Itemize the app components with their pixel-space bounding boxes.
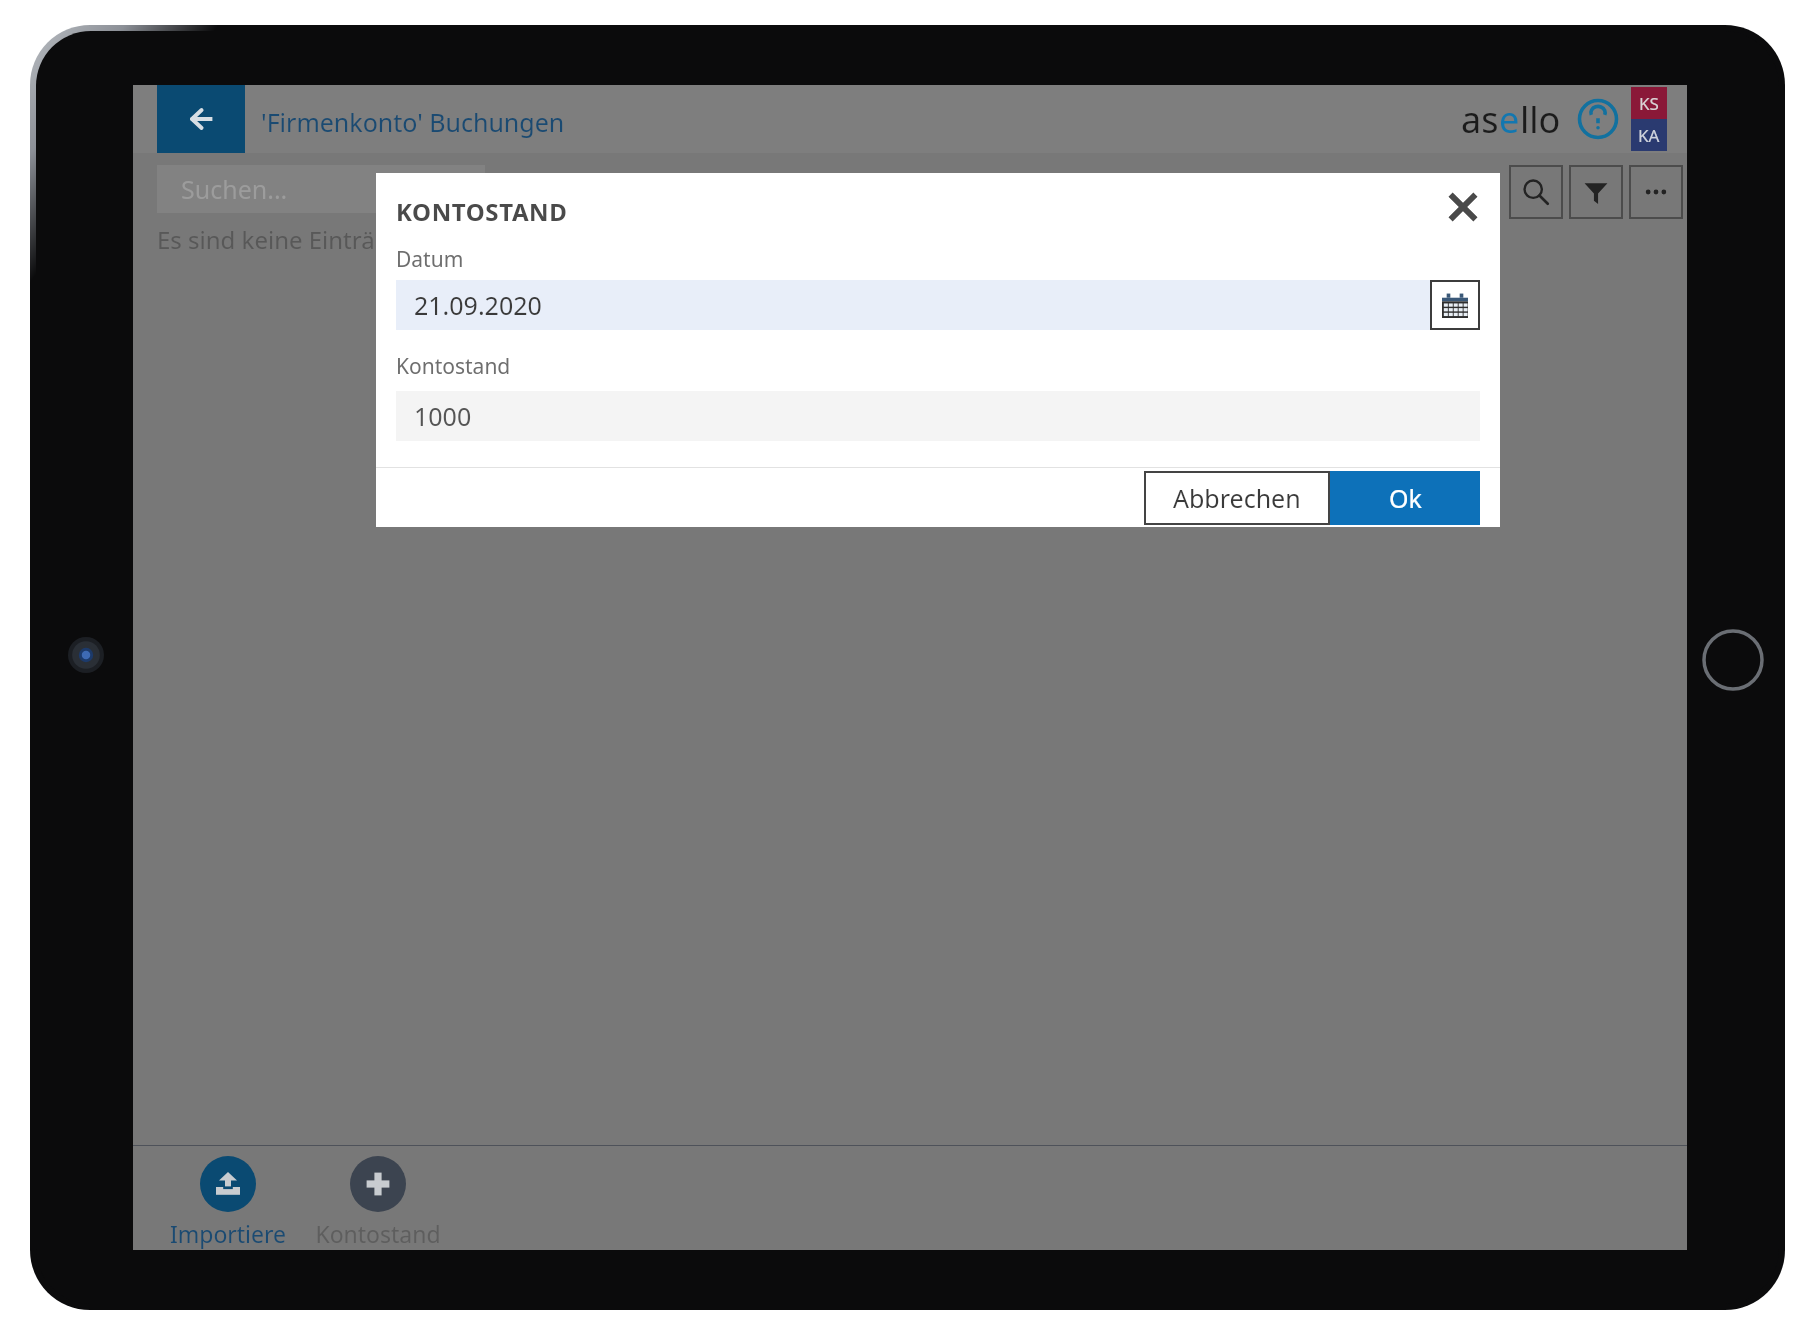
button[interactable]: Kontostand: [313, 1146, 443, 1249]
button[interactable]: KA: [1631, 119, 1667, 151]
button[interactable]: asello: [1461, 95, 1561, 144]
button[interactable]: Datum wählen: [1430, 280, 1480, 330]
button[interactable]: Importieren: [163, 1146, 293, 1250]
staticText: Abbrechen: [1173, 481, 1301, 515]
staticText: Es sind keine Einträge vorhanden.: [157, 223, 539, 256]
staticText: Importieren: [163, 1218, 293, 1250]
button[interactable]: Schließen: [1440, 184, 1486, 230]
button[interactable]: Ok: [1330, 471, 1480, 525]
staticText: e: [1499, 95, 1520, 144]
staticText: Kontostand: [396, 352, 511, 381]
staticText: 1000: [414, 399, 472, 433]
staticText: KA: [1638, 124, 1660, 147]
staticText: llo: [1520, 95, 1561, 144]
staticText: 'Firmenkonto' Buchungen: [261, 105, 565, 139]
button[interactable]: Hilfe: [1575, 96, 1621, 142]
button[interactable]: Zurück: [157, 85, 245, 153]
button[interactable]: 21.09.2020: [396, 280, 1430, 330]
staticText: Datum: [396, 245, 464, 274]
staticText: Suchen...: [181, 172, 288, 206]
button[interactable]: 1000: [396, 391, 1480, 441]
staticText: KONTOSTAND: [396, 195, 568, 228]
button[interactable]: Weitere Optionen: [1629, 165, 1683, 219]
button[interactable]: KS: [1631, 87, 1667, 119]
staticText: Ok: [1389, 481, 1422, 515]
staticText: KS: [1639, 92, 1659, 115]
button[interactable]: Suchen: [1509, 165, 1563, 219]
button[interactable]: Suchen...: [157, 165, 485, 213]
staticText: as: [1461, 95, 1499, 144]
button[interactable]: Filter: [1569, 165, 1623, 219]
staticText: 21.09.2020: [414, 288, 542, 322]
button[interactable]: Abbrechen: [1144, 471, 1330, 525]
staticText: Kontostand: [315, 1218, 441, 1249]
